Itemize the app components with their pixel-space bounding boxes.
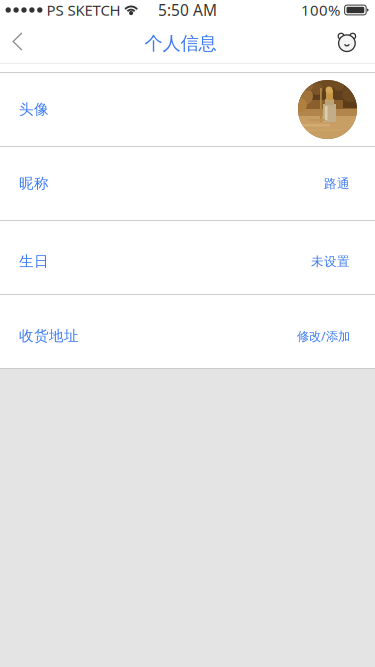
staticText: 100% [301, 0, 340, 20]
button[interactable]: 昵称 [0, 147, 375, 220]
staticText: 生日 [19, 252, 49, 271]
button[interactable]: Alarm [326, 20, 368, 63]
staticText: 收货地址 [19, 327, 79, 345]
staticText: 5:50 AM [158, 0, 217, 21]
button[interactable]: 收货地址 [0, 295, 375, 368]
staticText: 路通 [324, 176, 350, 191]
button[interactable]: Back [0, 20, 35, 63]
staticText: 未设置 [311, 254, 350, 269]
button[interactable]: 生日 [0, 221, 375, 294]
staticText: 个人信息 [144, 32, 216, 55]
button[interactable]: 头像 [0, 73, 375, 146]
staticText: PS SKETCH [46, 0, 120, 20]
staticText: 修改/添加 [297, 328, 350, 344]
staticText: 头像 [19, 100, 49, 119]
staticText: 昵称 [19, 174, 49, 193]
